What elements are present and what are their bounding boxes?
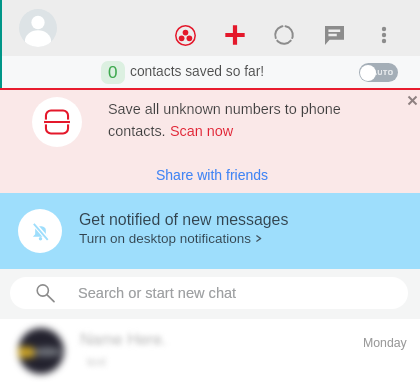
button[interactable]: Communities: [167, 17, 203, 53]
staticText: Name Here.: [80, 331, 167, 349]
staticText: Get notified of new messages: [79, 211, 289, 229]
button[interactable]: Share with friends: [156, 167, 269, 183]
button[interactable]: Search or start new chat: [10, 277, 408, 309]
button[interactable]: Profile: [19, 9, 57, 47]
button[interactable]: New: [217, 17, 253, 53]
staticText: Search or start new chat: [78, 285, 237, 301]
button[interactable]: Turn on desktop notifications: [79, 231, 262, 246]
staticText: text: [80, 355, 107, 368]
button[interactable]: New chat: [316, 17, 352, 53]
button[interactable]: Name Here.: [0, 318, 420, 388]
button[interactable]: Status: [266, 17, 302, 53]
staticText: Turn on desktop notifications: [79, 231, 252, 246]
button[interactable]: Scan now: [170, 123, 234, 139]
button[interactable]: Get notified of new messages: [0, 193, 420, 269]
button[interactable]: Close: [404, 92, 420, 108]
staticText: contacts saved so far!: [130, 64, 265, 79]
button[interactable]: Auto save contacts toggle: [359, 63, 398, 82]
staticText: Monday: [363, 336, 407, 350]
staticText: contacts.: [108, 123, 170, 139]
staticText: AUTO: [372, 69, 394, 77]
staticText: 0: [108, 63, 118, 82]
button[interactable]: Menu: [366, 17, 402, 53]
staticText: Save all unknown numbers to phone: [108, 101, 341, 117]
